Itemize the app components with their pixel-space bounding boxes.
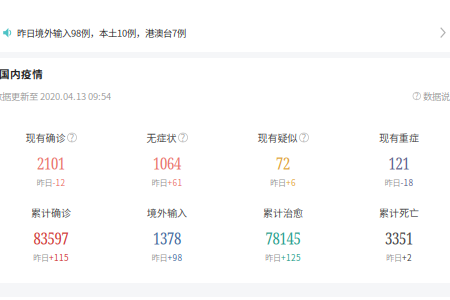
staticText: +115: [49, 251, 69, 263]
staticText: 累计治愈: [263, 205, 303, 220]
staticText: 3351: [385, 227, 413, 249]
staticText: 83597: [33, 227, 68, 249]
staticText: +125: [281, 251, 301, 263]
staticText: 昨日: [36, 176, 52, 188]
staticText: 数据更新至 2020.04.13 09:54: [0, 89, 111, 103]
staticText: 无症状: [146, 130, 176, 145]
staticText: 121: [388, 152, 409, 174]
staticText: +61: [167, 176, 182, 188]
staticText: 72: [276, 152, 290, 174]
staticText: 境外输入: [147, 205, 187, 220]
staticText: 78145: [265, 227, 300, 249]
staticText: 国内疫情: [0, 66, 43, 81]
staticText: 2101: [37, 152, 65, 174]
staticText: 昨日: [270, 176, 286, 188]
staticText: 昨日: [33, 251, 49, 263]
staticText: ?: [69, 130, 74, 145]
staticText: +6: [286, 176, 296, 188]
staticText: 昨日境外输入98例，本土10例，港澳台7例: [17, 26, 186, 39]
staticText: ?: [415, 90, 419, 102]
button[interactable]: 昨日境外输入98例，本土10例，港澳台7例: [0, 0, 450, 52]
staticText: 昨日: [151, 176, 167, 188]
staticText: 现有疑似: [257, 130, 297, 145]
staticText: 累计确诊: [31, 205, 71, 220]
staticText: 昨日: [265, 251, 281, 263]
staticText: -12: [52, 176, 65, 188]
staticText: +2: [402, 251, 412, 263]
staticText: 昨日: [384, 176, 400, 188]
button[interactable]: ?: [404, 89, 450, 103]
staticText: 昨日: [151, 251, 167, 263]
staticText: 现有确诊: [25, 130, 65, 145]
staticText: 现有重症: [379, 130, 419, 145]
staticText: -18: [400, 176, 413, 188]
staticText: ?: [301, 130, 306, 145]
staticText: ?: [180, 130, 185, 145]
staticText: +98: [167, 251, 182, 263]
staticText: 数据说明: [423, 89, 450, 103]
staticText: 累计死亡: [379, 205, 419, 220]
staticText: 1378: [153, 227, 181, 249]
staticText: 1064: [153, 152, 181, 174]
staticText: 昨日: [386, 251, 402, 263]
